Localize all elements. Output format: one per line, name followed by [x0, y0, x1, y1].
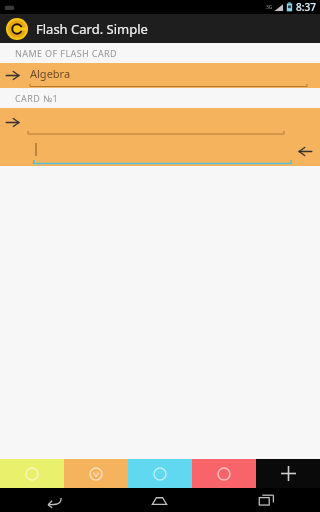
- other: Question side: [5, 115, 20, 130]
- button[interactable]: Back: [0, 488, 106, 512]
- button[interactable]: Orange theme: [64, 459, 128, 488]
- button[interactable]: Recent apps: [213, 488, 320, 512]
- button[interactable]: Home: [106, 488, 213, 512]
- staticText: 3G: [266, 4, 273, 11]
- button[interactable]: Red theme: [192, 459, 256, 488]
- staticText: 8:37: [296, 0, 316, 14]
- button[interactable]: Add card: [256, 459, 320, 488]
- staticText: Algebra: [30, 66, 71, 81]
- staticText: Flash Card. Simple: [36, 20, 148, 38]
- staticText: NAME OF FLASH CARD: [15, 47, 118, 59]
- other: Answer side: [298, 144, 313, 159]
- other: Next: [5, 68, 20, 83]
- button[interactable]: Cyan theme: [128, 459, 192, 488]
- button[interactable]: Yellow theme: [0, 459, 64, 488]
- button[interactable]: Next: [0, 63, 320, 88]
- button[interactable]: Question side: [0, 108, 320, 166]
- staticText: CARD №1: [15, 92, 59, 104]
